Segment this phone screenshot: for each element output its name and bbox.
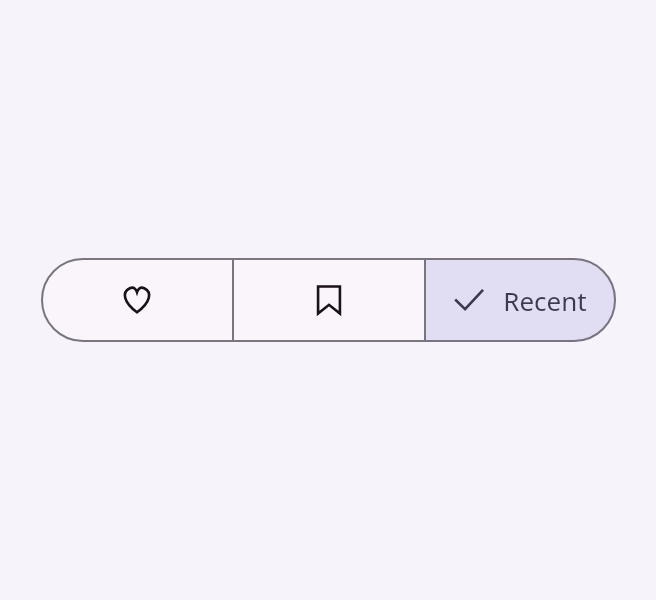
button[interactable]: Favorites <box>41 258 232 342</box>
button[interactable]: Recent <box>426 258 616 342</box>
staticText: Recent <box>503 283 587 318</box>
button[interactable]: Bookmarks <box>234 258 424 342</box>
